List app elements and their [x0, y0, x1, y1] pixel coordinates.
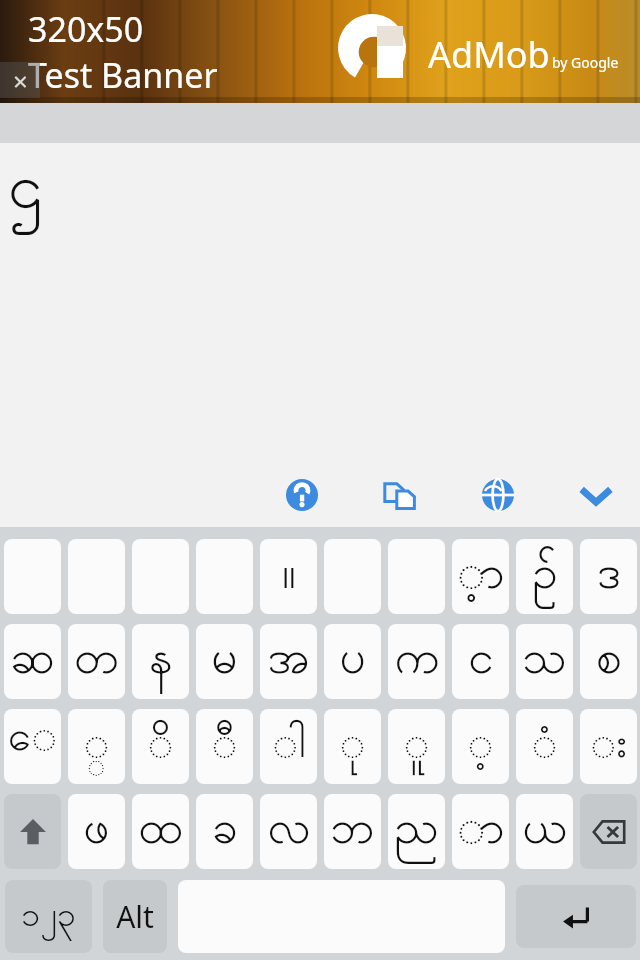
button[interactable] [132, 539, 189, 614]
button[interactable]: ပ [324, 624, 381, 699]
staticText: ခ [212, 798, 238, 866]
staticText: ၁၂၃ [21, 892, 76, 942]
staticText: အ [267, 628, 310, 696]
button[interactable]: မ [196, 624, 253, 699]
staticText: ဌ [8, 147, 43, 238]
button[interactable]: ့ာ [452, 539, 509, 614]
staticText: ံ [531, 716, 558, 778]
button[interactable]: ခ [196, 794, 253, 869]
button[interactable]: Clipboard [378, 473, 422, 517]
button[interactable]: လ [260, 794, 317, 869]
button[interactable]: က [388, 624, 445, 699]
button[interactable] [196, 539, 253, 614]
staticText: × [13, 63, 28, 98]
staticText: Alt [116, 896, 154, 937]
staticText: င [468, 628, 494, 696]
button[interactable]: ံ [516, 709, 573, 784]
button[interactable]: Enter [516, 885, 636, 948]
staticText: လ [267, 798, 311, 866]
staticText: ေ◌ [4, 709, 61, 784]
button[interactable]: Help [280, 473, 324, 517]
button[interactable]: ည [388, 794, 445, 869]
staticText: ူ [403, 716, 430, 778]
button[interactable]: ့ [452, 709, 509, 784]
staticText: Test Banner [28, 52, 218, 98]
staticText: ယ [522, 798, 567, 866]
staticText: သ [522, 628, 567, 696]
button[interactable]: း [580, 709, 637, 784]
button[interactable]: ါ [260, 709, 317, 784]
staticText: စ [596, 628, 622, 696]
button[interactable]: Hide keyboard [574, 473, 618, 517]
button[interactable]: ု [324, 709, 381, 784]
button[interactable]: ္ [68, 709, 125, 784]
button[interactable]: ဆ [4, 624, 61, 699]
button[interactable]: ယ [516, 794, 573, 869]
staticText: မ [211, 628, 238, 696]
staticText: ဖ [83, 798, 110, 866]
button[interactable]: ဒ [580, 539, 637, 614]
button[interactable]: Language [476, 473, 520, 517]
button[interactable]: အ [260, 624, 317, 699]
button[interactable] [68, 539, 125, 614]
staticText: 320x50 [28, 6, 144, 52]
button[interactable]: န [132, 624, 189, 699]
staticText: ့ာ [457, 543, 505, 611]
button[interactable] [324, 539, 381, 614]
staticText: န [149, 628, 173, 696]
staticText: ါ [272, 716, 306, 778]
button[interactable]: ေ◌ [4, 709, 61, 784]
staticText: ည [394, 798, 439, 866]
button[interactable]: ဘ [324, 794, 381, 869]
staticText: ဉ် [532, 543, 558, 611]
staticText: း [590, 716, 627, 778]
staticText: ာ [457, 798, 505, 866]
staticText: ္ [83, 716, 110, 778]
staticText: AdMob [428, 30, 550, 79]
staticText: က [394, 628, 440, 696]
staticText: တ [74, 628, 119, 696]
button[interactable]: ာ [452, 794, 509, 869]
staticText: ။ [282, 543, 296, 611]
button[interactable]: ီ [196, 709, 253, 784]
button[interactable]: Alt [103, 880, 167, 953]
button[interactable]: Backspace [580, 794, 637, 869]
staticText: ဘ [330, 798, 375, 866]
staticText: ီ [211, 716, 238, 778]
button[interactable]: သ [516, 624, 573, 699]
staticText: ု [339, 716, 366, 778]
button[interactable]: ိ [132, 709, 189, 784]
staticText: by Google [552, 53, 619, 72]
button[interactable] [4, 539, 61, 614]
staticText: ဆ [10, 628, 55, 696]
staticText: ဒ [597, 543, 621, 611]
button[interactable]: င [452, 624, 509, 699]
button[interactable]: Close ad [0, 62, 40, 98]
button[interactable]: ူ [388, 709, 445, 784]
staticText: ိ [147, 716, 174, 778]
button[interactable]: ။ [260, 539, 317, 614]
button[interactable]: Shift [4, 794, 61, 869]
staticText: ့ [467, 716, 494, 778]
button[interactable]: ထ [132, 794, 189, 869]
button[interactable]: စ [580, 624, 637, 699]
button[interactable]: ဉ် [516, 539, 573, 614]
button[interactable]: ဖ [68, 794, 125, 869]
button[interactable]: ၁၂၃ [5, 880, 92, 953]
staticText: ထ [138, 798, 183, 866]
staticText: ပ [339, 628, 366, 696]
button[interactable] [388, 539, 445, 614]
button[interactable]: တ [68, 624, 125, 699]
